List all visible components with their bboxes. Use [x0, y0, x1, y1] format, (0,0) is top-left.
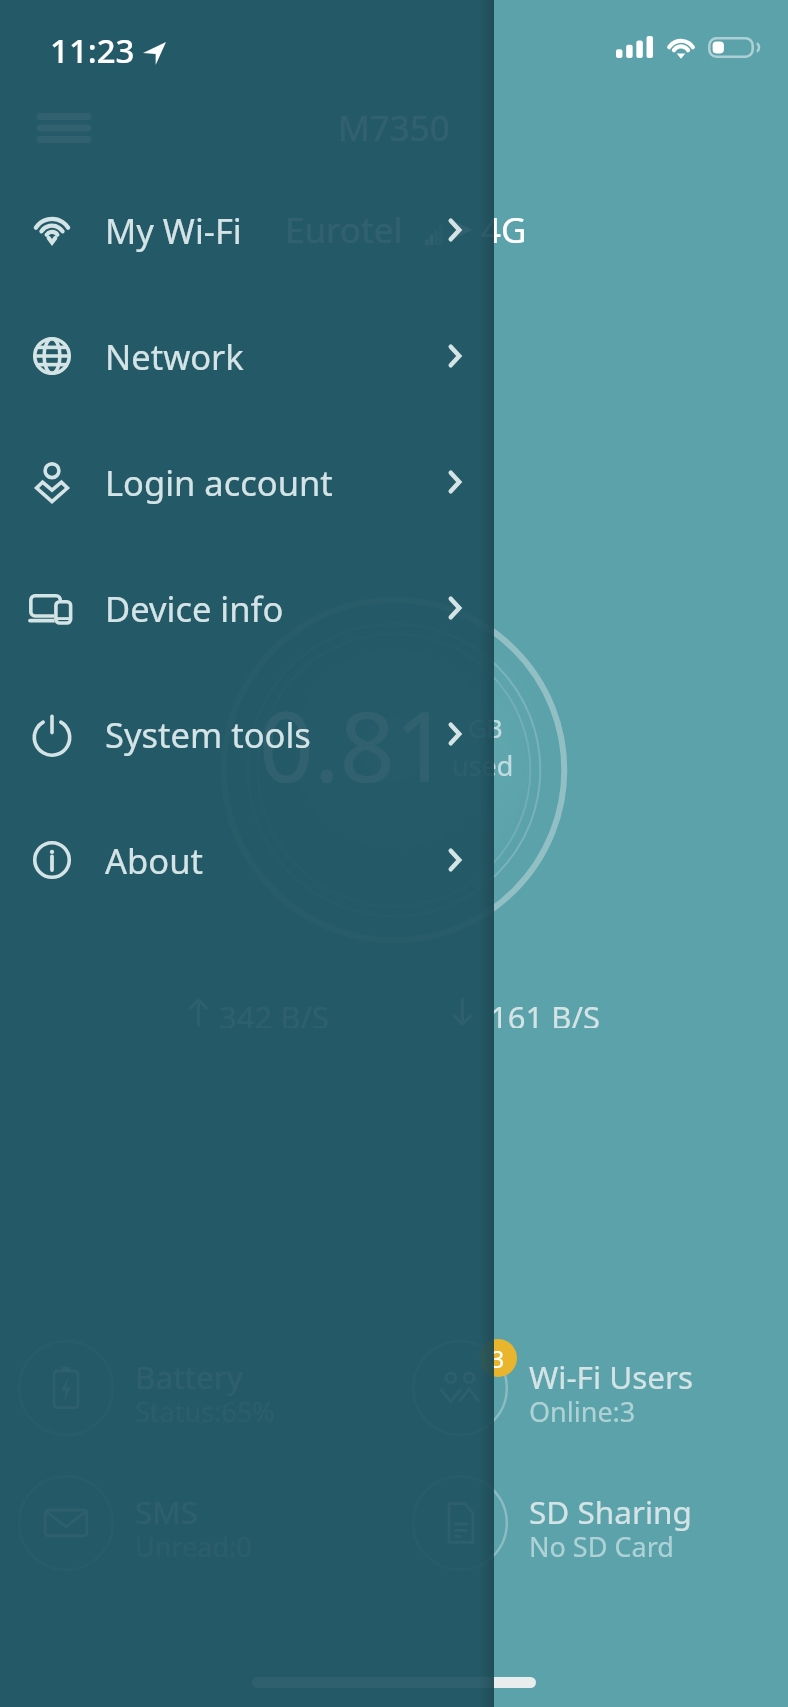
staticText: Network	[105, 333, 244, 380]
staticText: 0.81	[259, 679, 450, 810]
staticText: Eurotel	[285, 206, 403, 254]
staticText: Wi-Fi Users	[529, 1355, 694, 1398]
staticText: My Wi-Fi	[105, 207, 242, 254]
button[interactable]: SD Sharing	[394, 1475, 788, 1571]
staticText: 342 B/S	[219, 996, 329, 1028]
button[interactable]: My Wi-Fi	[0, 167, 494, 293]
staticText: GB	[468, 711, 503, 745]
staticText: 161 B/S	[490, 996, 600, 1028]
button[interactable]: 3	[394, 1340, 788, 1436]
staticText: SMS	[135, 1490, 199, 1533]
staticText: 3	[491, 1343, 505, 1374]
staticText: Login account	[105, 459, 333, 506]
button[interactable]: Eurotel	[285, 206, 527, 254]
button[interactable]: Network	[0, 293, 494, 419]
staticText: Online:3	[529, 1393, 636, 1430]
staticText: SD Sharing	[529, 1490, 692, 1533]
staticText: About	[105, 837, 203, 884]
button[interactable]: System tools	[0, 671, 494, 797]
staticText: Device info	[105, 585, 284, 632]
staticText: used	[452, 747, 514, 784]
staticText: Battery	[135, 1355, 243, 1398]
staticText: System tools	[105, 711, 311, 758]
button[interactable]: Login account	[0, 419, 494, 545]
staticText: 11:23	[50, 28, 135, 73]
button[interactable]: About	[0, 797, 494, 923]
staticText: 4G	[481, 206, 527, 254]
button[interactable]: Device info	[0, 545, 494, 671]
staticText: No SD Card	[529, 1528, 674, 1565]
button[interactable]: Open navigation menu	[28, 98, 100, 158]
staticText: M7350	[338, 104, 450, 152]
